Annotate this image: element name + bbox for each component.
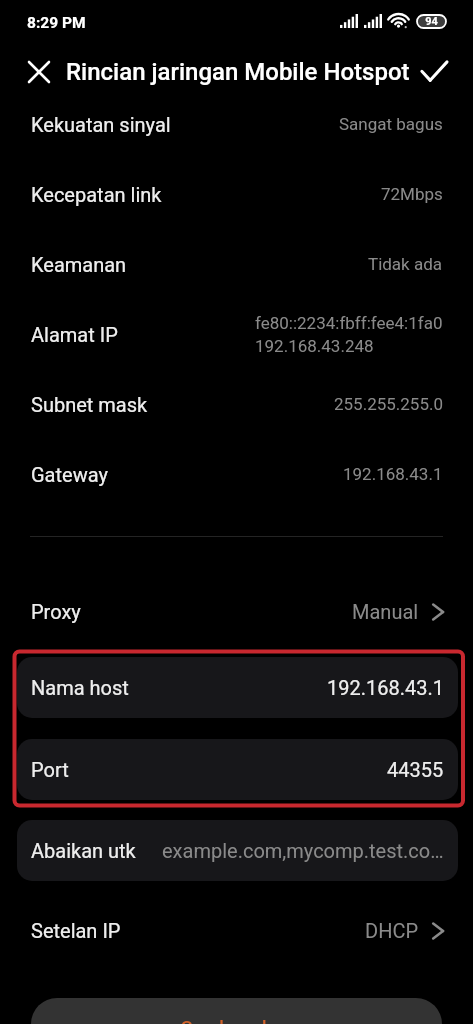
button[interactable]: Port <box>17 739 458 800</box>
button[interactable]: Kekuatan sinyal <box>0 89 473 159</box>
staticText: Tidak ada <box>368 254 443 274</box>
staticText: Nama host <box>31 676 129 699</box>
staticText: Sangat bagus <box>339 114 443 134</box>
staticText: Abaikan utk <box>31 839 136 862</box>
staticText: DHCP <box>365 919 419 942</box>
button[interactable]: Subnet mask <box>0 369 473 439</box>
staticText: Manual <box>352 600 419 623</box>
staticText: fe80::2234:fbff:fee4:1fa0 <box>255 313 443 333</box>
staticText: Kekuatan sinyal <box>31 113 171 136</box>
staticText: 192.168.43.1 <box>343 464 443 484</box>
button[interactable]: Proxy <box>0 576 473 646</box>
button[interactable]: Setelan IP <box>0 895 473 965</box>
button[interactable]: Alamat IP <box>0 299 473 369</box>
staticText: Port <box>31 758 69 781</box>
staticText: 192.168.43.1 <box>327 676 444 699</box>
staticText: Rincian jaringan Mobile Hotspot <box>66 58 410 86</box>
staticText: 72Mbps <box>381 184 443 204</box>
staticText: Proxy <box>31 600 81 623</box>
staticText: Keamanan <box>31 253 127 276</box>
staticText: Sambungkan <box>181 1016 293 1024</box>
button[interactable]: Close <box>17 50 61 94</box>
staticText: example.com,mycomp.test.co... <box>162 839 444 862</box>
staticText: Kecepatan link <box>31 183 162 206</box>
staticText: Alamat IP <box>31 323 118 346</box>
button[interactable]: Sambungkan <box>31 998 442 1024</box>
staticText: 44355 <box>387 758 444 781</box>
button[interactable]: Save <box>412 49 458 94</box>
staticText: Setelan IP <box>31 919 121 942</box>
staticText: Gateway <box>31 463 108 486</box>
staticText: 192.168.43.248 <box>255 336 374 356</box>
button[interactable]: Abaikan utk <box>17 820 458 881</box>
staticText: 255.255.255.0 <box>334 394 443 414</box>
staticText: Subnet mask <box>31 393 148 416</box>
button[interactable]: Kecepatan link <box>0 159 473 229</box>
button[interactable]: Nama host <box>17 657 458 718</box>
button[interactable]: Gateway <box>0 439 473 509</box>
button[interactable]: Keamanan <box>0 229 473 299</box>
staticText: 94 <box>425 15 438 28</box>
staticText: 8:29 PM <box>27 14 86 32</box>
